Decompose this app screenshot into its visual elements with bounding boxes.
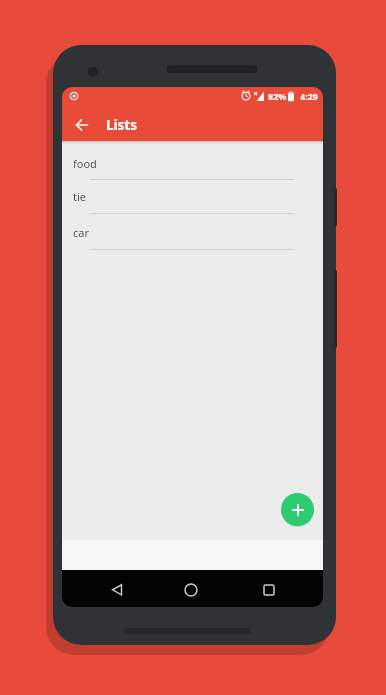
button[interactable] — [106, 579, 128, 601]
staticText: Lists — [106, 116, 137, 134]
button[interactable]: car — [62, 214, 323, 246]
staticText: food — [73, 156, 97, 171]
staticText: car — [73, 225, 89, 240]
button[interactable]: tie — [62, 178, 323, 210]
staticText: 4:29 — [300, 90, 318, 102]
button[interactable] — [281, 493, 314, 526]
button[interactable] — [258, 579, 280, 601]
staticText: tie — [73, 189, 87, 204]
staticText: 82% — [268, 90, 287, 102]
button[interactable]: food — [62, 145, 323, 177]
button[interactable] — [180, 579, 202, 601]
button[interactable] — [70, 113, 94, 137]
